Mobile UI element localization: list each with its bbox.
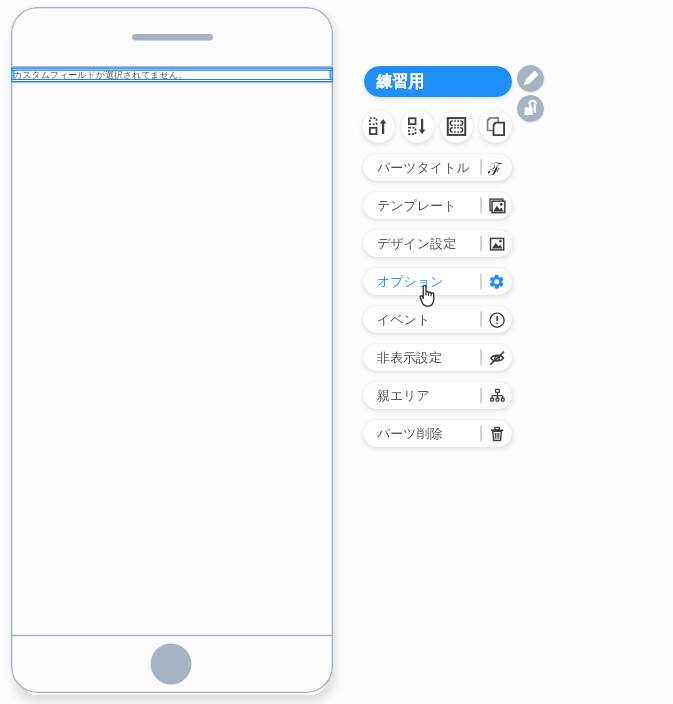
button[interactable]: デザイン設定: [363, 230, 512, 257]
staticText: カスタムフィールドが選択されてません。: [13, 69, 188, 80]
button[interactable]: Duplicate: [479, 110, 512, 143]
button[interactable]: パーツタイトル: [363, 154, 512, 181]
staticText: テンプレート: [377, 197, 457, 213]
button[interactable]: 非表示設定: [363, 344, 512, 371]
staticText: ℱ: [488, 157, 503, 180]
button[interactable]: Move down: [401, 110, 434, 143]
button[interactable]: イベント: [363, 306, 512, 333]
staticText: 練習用: [376, 72, 424, 92]
button[interactable]: Edit: [517, 65, 544, 92]
button[interactable]: Layout grid: [440, 110, 473, 143]
staticText: 非表示設定: [377, 349, 442, 365]
button[interactable]: テンプレート: [363, 192, 512, 219]
button[interactable]: 練習用: [364, 66, 512, 97]
button[interactable]: Unlock: [517, 95, 544, 122]
button[interactable]: 親エリア: [363, 382, 512, 409]
staticText: パーツタイトル: [377, 159, 470, 175]
button[interactable]: Move up: [362, 110, 395, 143]
staticText: オプション: [377, 273, 444, 289]
button[interactable]: パーツ削除: [363, 420, 512, 447]
staticText: イベント: [377, 311, 431, 327]
staticText: パーツ削除: [377, 425, 443, 441]
button[interactable]: オプション: [363, 268, 512, 295]
staticText: デザイン設定: [377, 235, 457, 251]
staticText: 親エリア: [377, 387, 430, 403]
